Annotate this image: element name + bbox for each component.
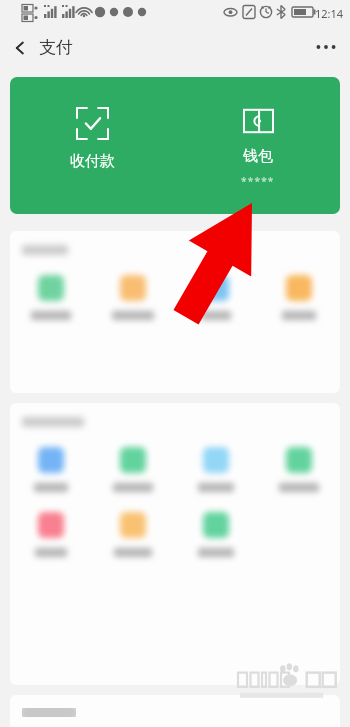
button[interactable]: 收付款 (10, 77, 175, 214)
staticText: 支付 (39, 37, 73, 58)
button[interactable] (174, 507, 257, 577)
button[interactable]: More options (302, 34, 350, 60)
button[interactable] (92, 437, 174, 507)
button[interactable]: 钱包 (175, 77, 340, 214)
button[interactable] (10, 265, 92, 335)
button[interactable] (174, 265, 257, 335)
other: Back (12, 40, 28, 56)
staticText: 12:14 (315, 6, 344, 21)
button[interactable] (10, 507, 92, 577)
button[interactable] (174, 437, 257, 507)
button[interactable]: Back (0, 37, 79, 58)
staticText: 收付款 (70, 152, 115, 171)
button[interactable] (92, 507, 174, 577)
button[interactable] (92, 265, 174, 335)
button[interactable] (257, 437, 340, 507)
staticText: ***** (241, 174, 275, 188)
staticText: 钱包 (243, 147, 273, 166)
button[interactable] (10, 437, 92, 507)
button[interactable] (257, 265, 340, 335)
